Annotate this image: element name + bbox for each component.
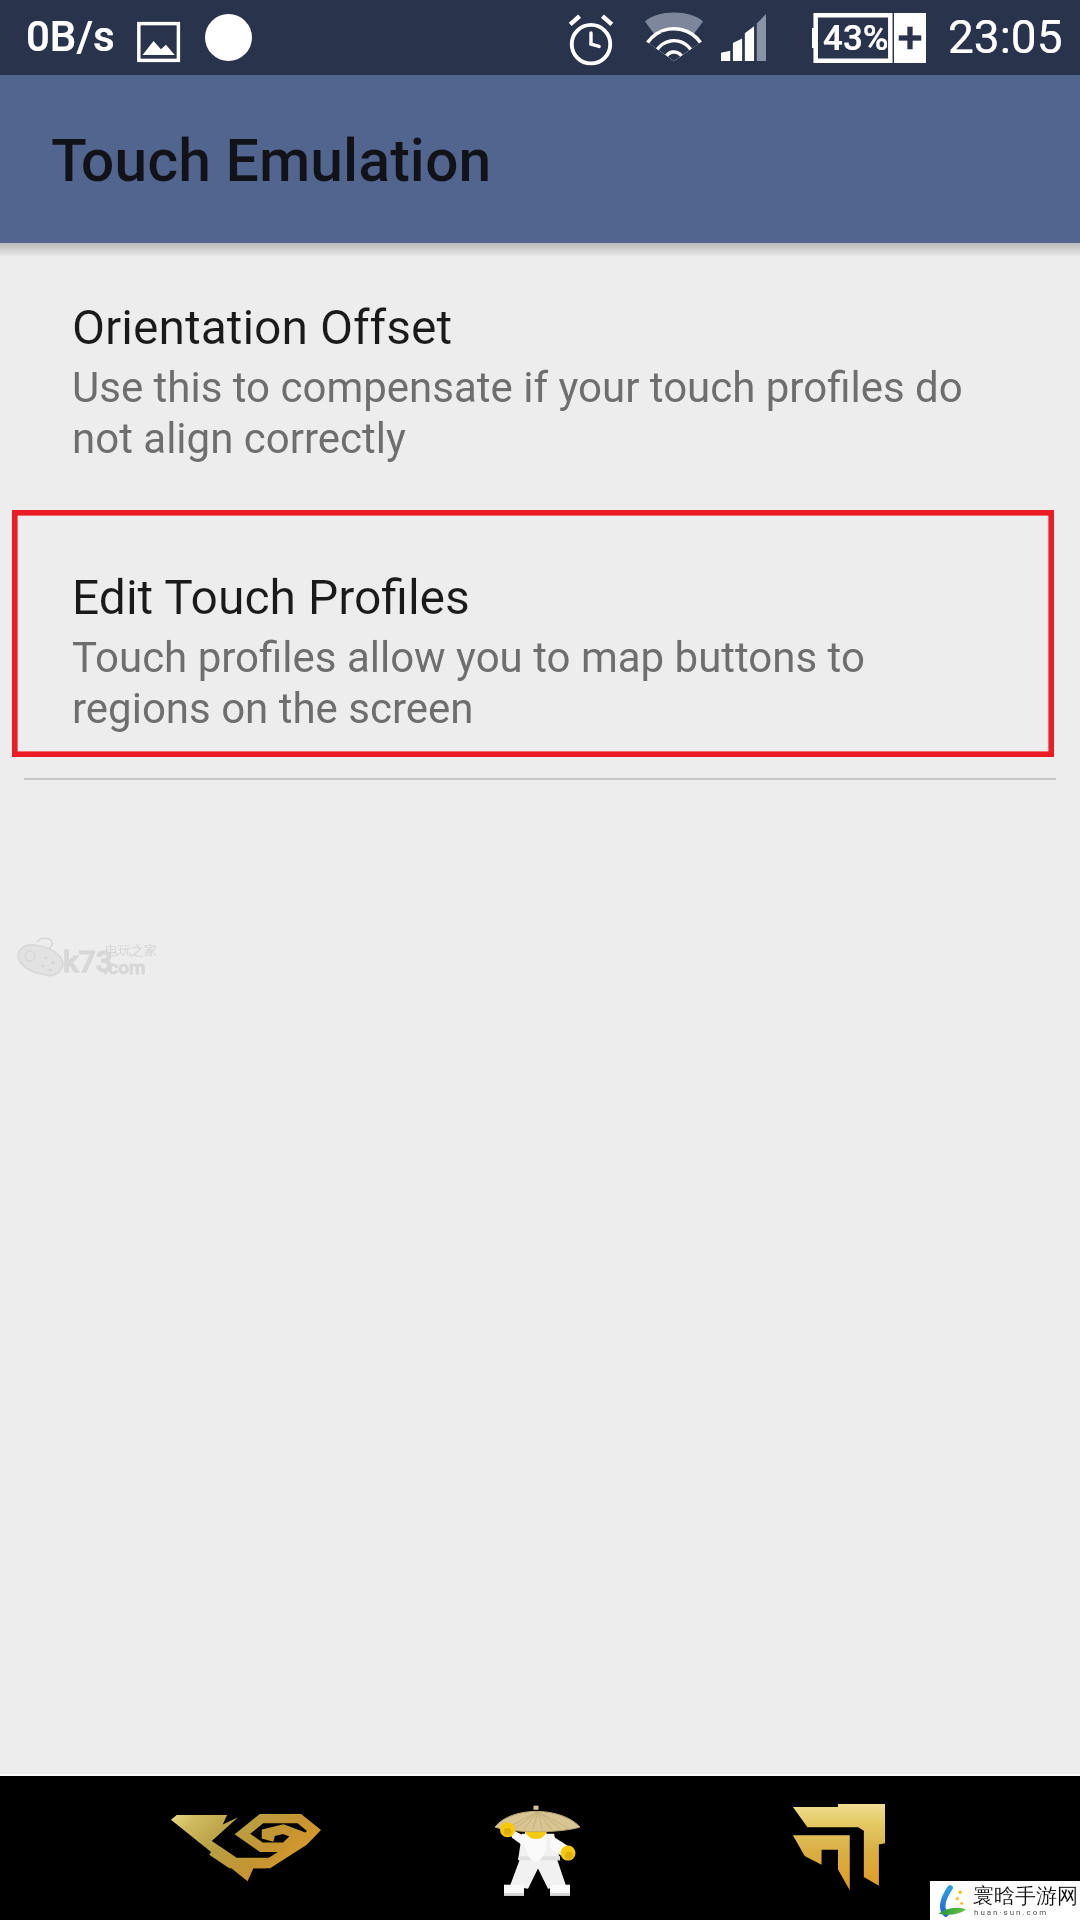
staticText: k73 — [63, 944, 113, 979]
staticText: Use this to compensate if your touch pro… — [72, 363, 967, 464]
staticText: 0B/s — [26, 12, 115, 61]
button[interactable]: Orientation Offset — [0, 265, 1080, 510]
staticText: Touch profiles allow you to map buttons … — [72, 633, 967, 734]
staticText: Edit Touch Profiles — [72, 569, 1012, 625]
staticText: Orientation Offset — [72, 299, 1012, 355]
staticText: Touch Emulation — [51, 126, 492, 195]
staticText: 43% — [823, 18, 889, 59]
button[interactable]: Back — [0, 1776, 360, 1920]
button[interactable]: Edit Touch Profiles — [0, 510, 1080, 757]
button[interactable]: Recent apps — [720, 1776, 1080, 1920]
staticText: 寰晗手游网 — [973, 1883, 1078, 1909]
button[interactable]: Home — [360, 1776, 720, 1920]
staticText: .com — [103, 956, 146, 978]
staticText: 电玩之家 — [105, 942, 157, 958]
staticText: 23:05 — [948, 10, 1063, 64]
staticText: h u a n · s u n . c o m — [974, 1908, 1047, 1917]
